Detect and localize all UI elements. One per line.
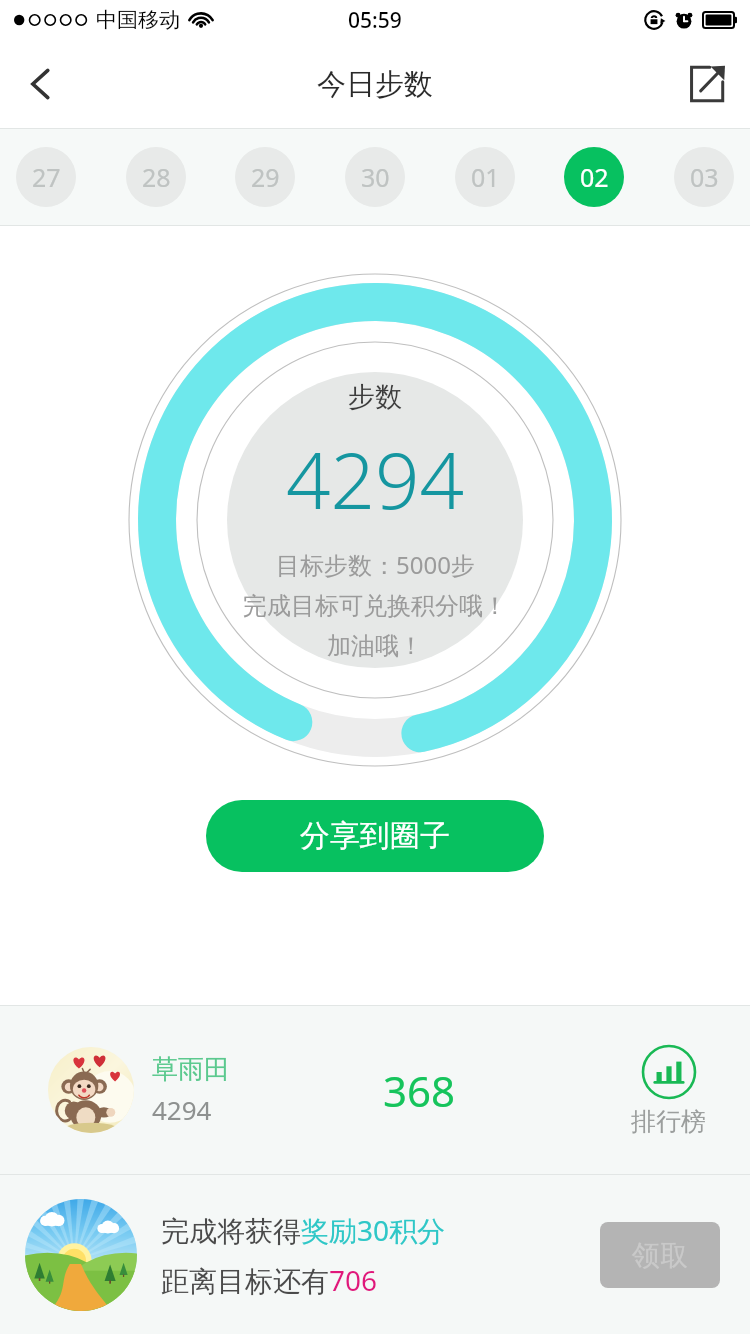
staticText: 距离目标还有706 (161, 1261, 378, 1299)
staticText: 30 (361, 160, 390, 194)
staticText: 4294 (152, 1092, 212, 1127)
button[interactable]: 30 (345, 147, 405, 207)
staticText: 05:59 (348, 6, 402, 35)
button[interactable]: 27 (16, 147, 76, 207)
button[interactable]: 领取 (600, 1222, 720, 1288)
staticText: 02 (580, 160, 609, 194)
staticText: 368 (383, 1062, 456, 1119)
button[interactable]: 02 (564, 147, 624, 207)
staticText: 步数 (348, 380, 402, 414)
button[interactable]: Share (676, 54, 736, 114)
button[interactable]: 28 (126, 147, 186, 207)
button[interactable]: Back (10, 53, 72, 115)
staticText: 中国移动 (96, 7, 180, 33)
staticText: 排行榜 (631, 1106, 706, 1137)
button[interactable]: 29 (235, 147, 295, 207)
staticText: 加油哦！ (327, 631, 423, 661)
staticText: 目标步数：5000步 (276, 548, 475, 581)
staticText: 27 (32, 160, 61, 194)
button[interactable]: 草雨田 (0, 1006, 750, 1174)
button[interactable]: 03 (674, 147, 734, 207)
button[interactable]: 01 (455, 147, 515, 207)
staticText: 4294 (286, 426, 465, 532)
button[interactable]: 分享到圈子 (206, 800, 544, 872)
staticText: 完成目标可兑换积分哦！ (243, 591, 507, 621)
staticText: 分享到圈子 (300, 817, 450, 855)
staticText: 完成将获得奖励30积分 (161, 1211, 446, 1249)
staticText: 28 (142, 160, 171, 194)
staticText: 03 (690, 160, 719, 194)
staticText: 01 (471, 160, 500, 194)
staticText: 草雨田 (152, 1053, 230, 1086)
staticText: 领取 (632, 1238, 688, 1273)
staticText: 今日步数 (317, 66, 433, 103)
staticText: 29 (251, 160, 280, 194)
